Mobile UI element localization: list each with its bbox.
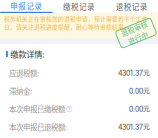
button[interactable]: 退税记录	[105, 0, 158, 13]
staticText: 退税审核	[122, 23, 150, 33]
staticText: 4301.37元	[118, 123, 150, 131]
staticText: 本次申报已缴税额	[9, 104, 65, 114]
staticText: 申报记录	[10, 0, 42, 11]
staticText: 0.00元	[129, 87, 150, 95]
staticText: 应退税额:	[9, 68, 39, 78]
staticText: 进行中	[125, 33, 146, 43]
staticText: 缴税记录	[63, 1, 95, 12]
button[interactable]: 缴税记录	[53, 0, 105, 13]
staticText: 退税记录	[116, 1, 148, 12]
button[interactable]: 申报记录	[0, 0, 53, 13]
staticText: 税务机关正在审核您的退税申请，预计需要若干个工作日，请关注退税进度提醒，耐心等待…	[4, 14, 148, 31]
staticText: 4301.37元	[118, 69, 150, 77]
staticText: ?	[68, 106, 71, 112]
staticText: 本次申报已退税额:	[9, 122, 67, 132]
staticText: 滞纳金:	[9, 86, 32, 96]
staticText: 缴款详情:	[10, 48, 44, 60]
staticText: 0.00元	[129, 105, 150, 113]
